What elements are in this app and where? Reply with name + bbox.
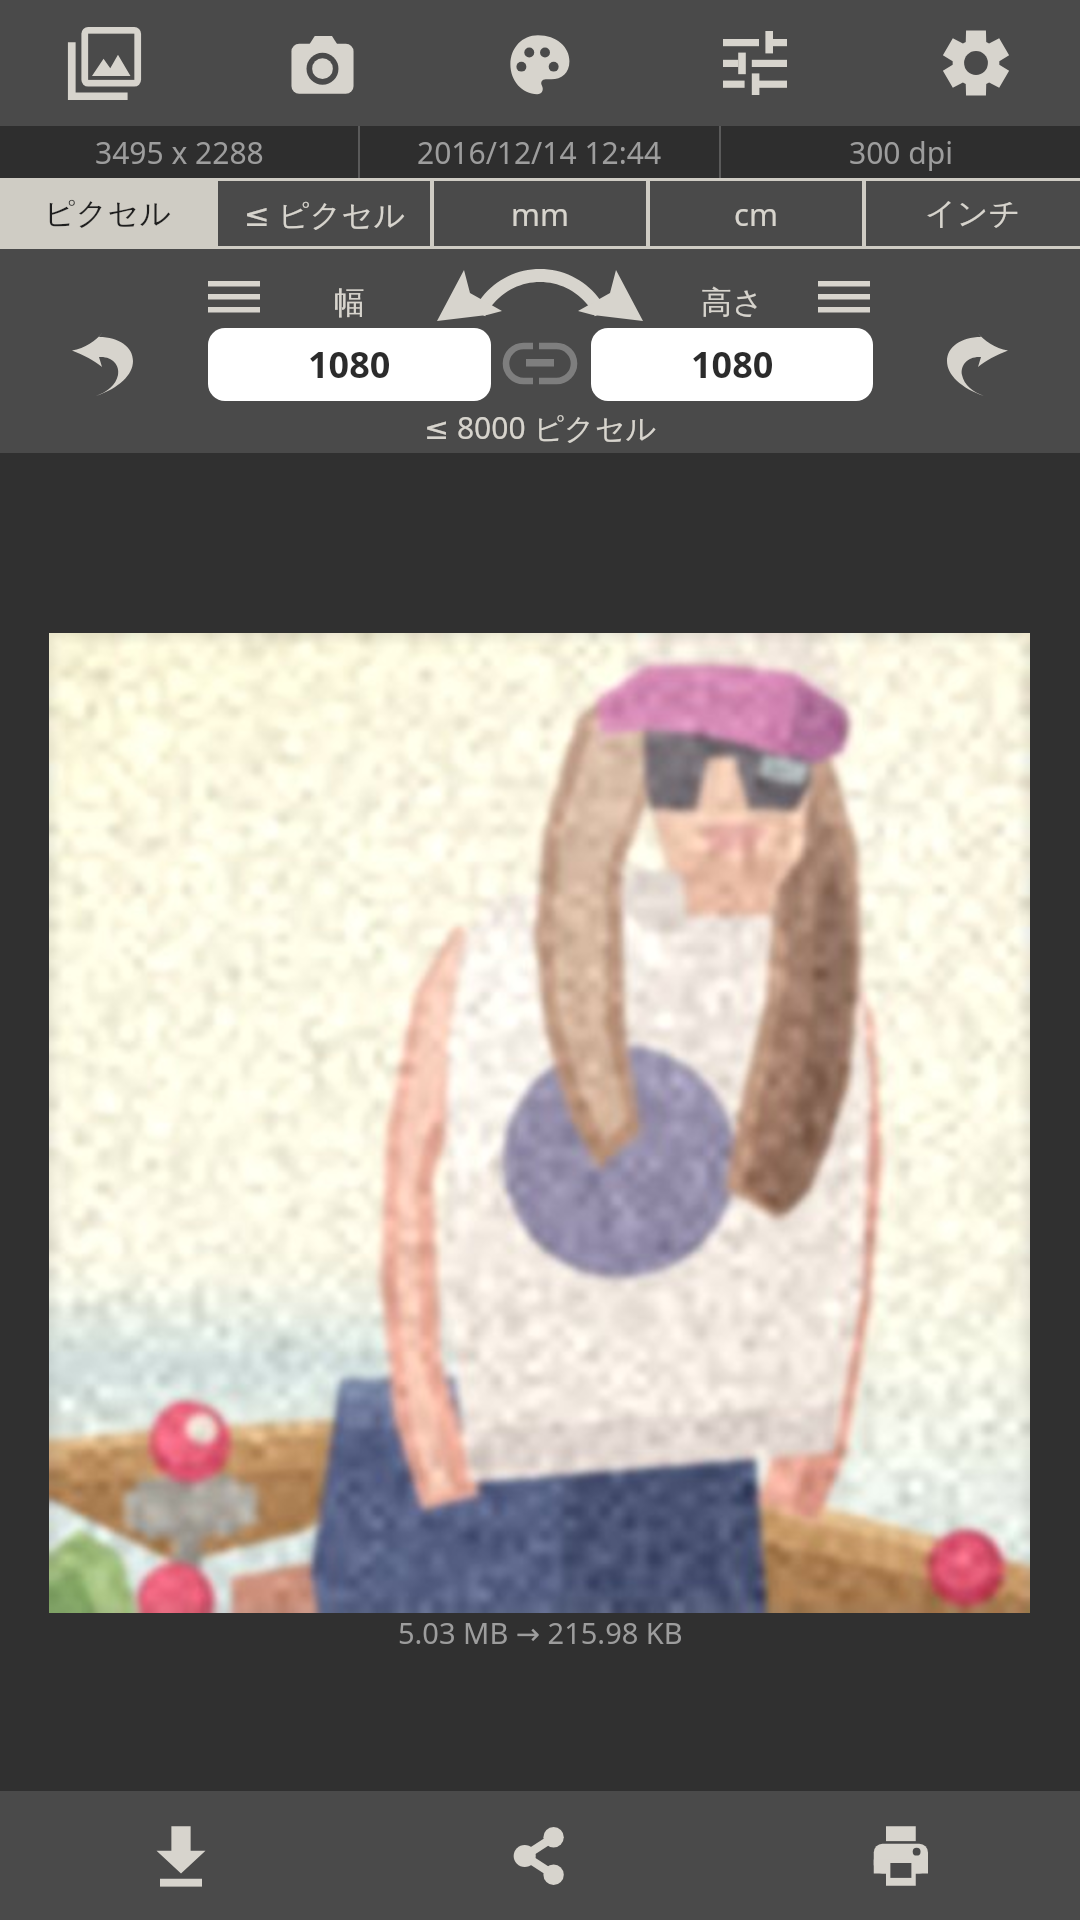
staticText: 3495 x 2288 bbox=[95, 132, 264, 173]
staticText: 2016/12/14 12:44 bbox=[417, 132, 662, 173]
staticText: インチ bbox=[925, 194, 1021, 233]
button[interactable]: Save bbox=[0, 1791, 360, 1920]
button[interactable]: ピクセル bbox=[0, 181, 214, 246]
staticText: 300 dpi bbox=[849, 132, 953, 173]
button[interactable]: Adjust bbox=[648, 0, 864, 126]
button[interactable]: 1080 bbox=[591, 328, 873, 401]
staticText: ≤ 8000 ピクセル bbox=[424, 407, 657, 448]
button[interactable]: mm bbox=[434, 181, 646, 246]
staticText: 1080 bbox=[308, 340, 391, 389]
button[interactable]: Gallery bbox=[0, 0, 216, 126]
button[interactable]: Settings bbox=[864, 0, 1080, 126]
button[interactable]: インチ bbox=[866, 181, 1080, 246]
staticText: cm bbox=[734, 193, 778, 235]
button[interactable]: Share bbox=[360, 1791, 720, 1920]
staticText: ≤ ピクセル bbox=[244, 193, 405, 235]
button[interactable]: ≤ ピクセル bbox=[218, 181, 430, 246]
staticText: ピクセル bbox=[44, 194, 171, 233]
staticText: 5.03 MB → 215.98 KB bbox=[398, 1613, 683, 1649]
button[interactable]: Camera bbox=[216, 0, 432, 126]
staticText: 高さ bbox=[701, 283, 764, 322]
button[interactable]: Print bbox=[720, 1791, 1080, 1920]
button[interactable]: Palette bbox=[432, 0, 648, 126]
button[interactable]: 1080 bbox=[208, 328, 491, 401]
staticText: 1080 bbox=[691, 340, 774, 389]
button[interactable]: cm bbox=[650, 181, 862, 246]
staticText: mm bbox=[511, 193, 569, 235]
staticText: 幅 bbox=[334, 283, 365, 322]
